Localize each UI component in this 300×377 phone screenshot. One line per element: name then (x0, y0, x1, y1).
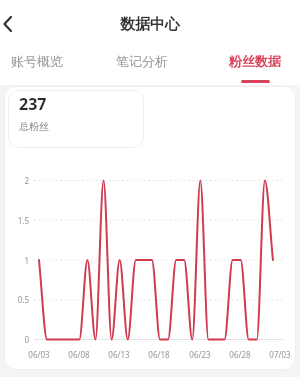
button[interactable]: 237 (8, 90, 144, 148)
staticText: 06/28 (220, 349, 260, 360)
staticText: 账号概览 (11, 53, 63, 69)
staticText: 06/18 (139, 349, 179, 360)
staticText: 0 (0, 334, 29, 345)
staticText: 06/13 (99, 349, 139, 360)
staticText: 237 (19, 93, 47, 115)
staticText: 数据中心 (120, 15, 180, 34)
staticText: 06/03 (19, 349, 59, 360)
button[interactable]: 账号概览 (6, 48, 68, 74)
staticText: 0.5 (0, 294, 29, 305)
staticText: 总粉丝 (19, 120, 49, 133)
staticText: 06/08 (59, 349, 99, 360)
staticText: 1 (0, 255, 29, 266)
staticText: 1.5 (0, 215, 29, 226)
staticText: 06/23 (180, 349, 220, 360)
staticText: 07/03 (260, 349, 300, 360)
button[interactable] (0, 10, 28, 38)
staticText: 粉丝数据 (229, 53, 281, 69)
staticText: 笔记分析 (116, 53, 168, 69)
staticText: 2 (0, 175, 29, 186)
button[interactable]: 粉丝数据 (224, 48, 286, 74)
button[interactable]: 笔记分析 (111, 48, 173, 74)
